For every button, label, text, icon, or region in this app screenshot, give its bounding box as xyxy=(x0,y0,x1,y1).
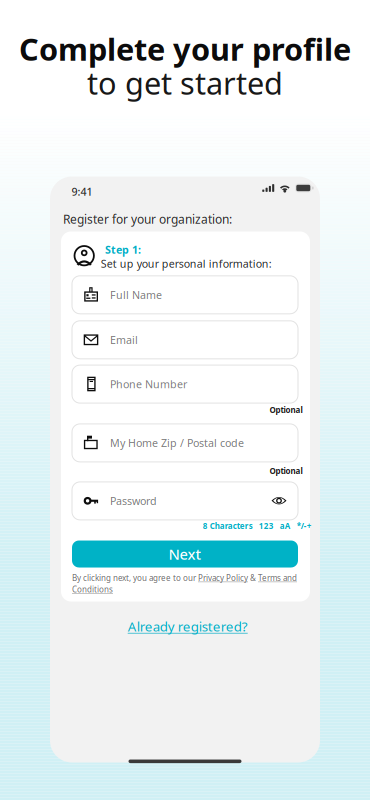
button[interactable]: Show password xyxy=(271,493,287,509)
button[interactable]: Next xyxy=(72,540,298,567)
staticText: By clicking next, you agree to our Priva… xyxy=(72,572,297,583)
button[interactable]: My Home Zip / Postal code xyxy=(72,424,298,462)
button[interactable]: Password xyxy=(72,482,298,520)
button[interactable]: Full Name xyxy=(72,276,298,314)
staticText: 9:41 xyxy=(71,184,92,199)
staticText: My Home Zip / Postal code xyxy=(110,436,244,450)
staticText: Full Name xyxy=(110,288,162,302)
staticText: Complete your profile xyxy=(19,28,351,69)
staticText: Optional xyxy=(269,404,302,415)
staticText: Email xyxy=(110,333,138,347)
staticText: Step 1: xyxy=(105,242,141,257)
button[interactable]: Phone Number xyxy=(72,365,298,403)
staticText: Already registered? xyxy=(128,617,248,635)
staticText: aA xyxy=(280,520,291,531)
staticText: 8 Characters xyxy=(203,520,253,531)
staticText: Register for your organization: xyxy=(63,211,232,227)
staticText: */-+ xyxy=(297,520,312,531)
staticText: Password xyxy=(110,494,157,508)
button[interactable]: Email xyxy=(72,321,298,359)
staticText: Set up your personal information: xyxy=(101,256,272,271)
staticText: 123 xyxy=(259,520,274,531)
staticText: Next xyxy=(168,544,201,564)
staticText: Conditions xyxy=(72,584,113,595)
staticText: Phone Number xyxy=(110,377,187,391)
button[interactable]: Already registered? xyxy=(128,617,248,635)
staticText: Optional xyxy=(269,465,302,476)
staticText: to get started xyxy=(87,62,283,103)
